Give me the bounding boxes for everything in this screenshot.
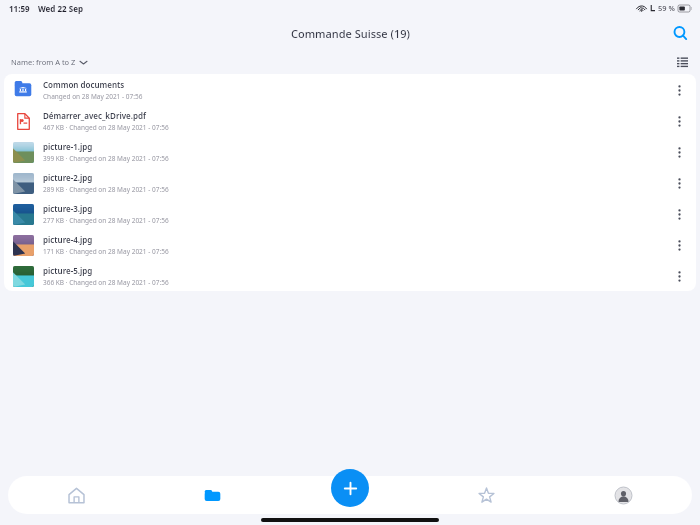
button[interactable]: More options: [666, 77, 692, 103]
button[interactable]: More options: [666, 232, 692, 258]
staticText: 366 KB · Changed on 28 May 2021 - 07:56: [43, 278, 169, 287]
button[interactable]: Home: [8, 476, 144, 514]
button[interactable]: More options: [666, 108, 692, 134]
staticText: Changed on 28 May 2021 - 07:56: [43, 92, 143, 101]
button[interactable]: picture-1.jpg: [4, 136, 696, 167]
staticText: 399 KB · Changed on 28 May 2021 - 07:56: [43, 154, 169, 163]
button[interactable]: picture-3.jpg: [4, 198, 696, 229]
staticText: picture-3.jpg: [43, 203, 93, 214]
button[interactable]: Toggle list view: [670, 50, 694, 74]
staticText: Common documents: [43, 79, 125, 90]
staticText: Démarrer_avec_kDrive.pdf: [43, 110, 146, 121]
staticText: Commande Suisse (19): [291, 26, 410, 41]
button[interactable]: Files: [144, 476, 281, 514]
staticText: 171 KB · Changed on 28 May 2021 - 07:56: [43, 247, 169, 256]
button[interactable]: Name: from A to Z: [8, 54, 90, 70]
staticText: picture-2.jpg: [43, 172, 93, 183]
button[interactable]: Search: [665, 18, 695, 48]
button[interactable]: Favorites: [418, 476, 555, 514]
button[interactable]: picture-2.jpg: [4, 167, 696, 198]
button[interactable]: picture-5.jpg: [4, 260, 696, 291]
button[interactable]: Démarrer_avec_kDrive.pdf: [4, 105, 696, 136]
staticText: 11:59: [9, 3, 30, 14]
button[interactable]: More options: [666, 170, 692, 196]
staticText: Name: from A to Z: [11, 57, 76, 67]
staticText: picture-4.jpg: [43, 234, 93, 245]
staticText: 277 KB · Changed on 28 May 2021 - 07:56: [43, 216, 169, 225]
button[interactable]: Add: [331, 469, 369, 507]
staticText: picture-1.jpg: [43, 141, 93, 152]
staticText: 289 KB · Changed on 28 May 2021 - 07:56: [43, 185, 169, 194]
button[interactable]: Profile: [555, 476, 692, 514]
button[interactable]: More options: [666, 263, 692, 289]
button[interactable]: picture-4.jpg: [4, 229, 696, 260]
button[interactable]: More options: [666, 139, 692, 165]
staticText: 59 %: [658, 3, 675, 13]
staticText: 467 KB · Changed on 28 May 2021 - 07:56: [43, 123, 169, 132]
button[interactable]: Common documents: [4, 74, 696, 105]
staticText: Wed 22 Sep: [38, 3, 83, 14]
button[interactable]: More options: [666, 201, 692, 227]
staticText: picture-5.jpg: [43, 265, 93, 276]
